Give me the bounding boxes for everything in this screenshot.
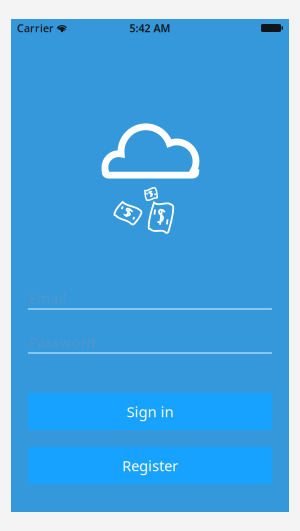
staticText: Sign in — [126, 402, 173, 421]
staticText: Password — [28, 332, 95, 352]
staticText: Email — [28, 288, 66, 308]
button[interactable]: Register — [28, 447, 272, 484]
staticText: 5:42 AM — [129, 21, 170, 35]
staticText: Carrier — [17, 21, 54, 35]
button[interactable]: Password — [28, 334, 272, 354]
staticText: Register — [122, 456, 178, 475]
button[interactable]: Sign in — [28, 393, 272, 430]
button[interactable]: Email — [28, 290, 272, 310]
